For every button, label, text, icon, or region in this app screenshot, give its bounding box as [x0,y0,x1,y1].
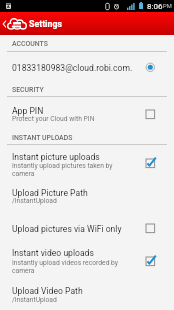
staticText: PM [163,3,172,10]
staticText: 01833180983@cloud.robi.com.bd [12,63,135,73]
staticText: INSTANT UPLOADS [12,134,73,142]
staticText: Upload Video Path [12,286,83,296]
button[interactable] [0,54,174,80]
staticText: Upload Picture Path [12,188,88,198]
staticText: Instant picture uploads [12,152,100,162]
staticText: Instantly upload videos recorded by came… [12,259,124,275]
button[interactable] [0,219,174,239]
staticText: SECURITY [12,86,44,94]
button[interactable] [0,244,174,276]
staticText: App PIN [12,106,44,116]
staticText: Instantly upload pictures taken by camer… [12,162,124,178]
staticText: ACCOUNTS [12,40,48,48]
button[interactable] [0,281,174,307]
staticText: Protect your Cloud with PIN [12,115,95,123]
button[interactable] [0,183,174,209]
staticText: 8:06 [147,2,163,11]
staticText: Instant video uploads [12,248,94,258]
button[interactable]: Back [0,12,9,35]
staticText: Settings [29,19,62,29]
staticText: /InstantUpload [12,296,57,304]
staticText: /InstantUpload [12,197,57,205]
button[interactable] [0,147,174,179]
button[interactable] [0,100,174,126]
staticText: Upload pictures via WiFi only [12,224,122,234]
